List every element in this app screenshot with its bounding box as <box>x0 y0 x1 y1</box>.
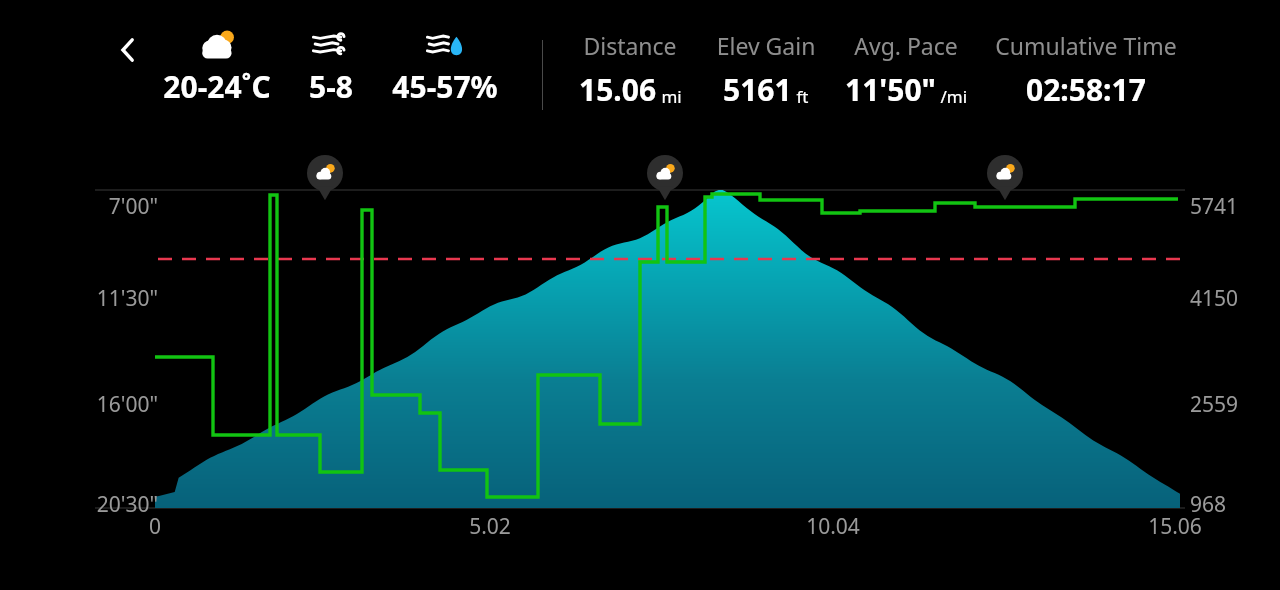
staticText: 11'30" <box>20 284 158 313</box>
staticText: 5161 <box>723 69 792 110</box>
button[interactable]: Distance <box>515 30 745 110</box>
staticText: 02:58:17 <box>1026 69 1146 110</box>
staticText: ft <box>792 85 809 108</box>
staticText: 0 <box>95 512 215 541</box>
staticText: Elev Gain <box>651 30 881 61</box>
staticText: 5-8 <box>256 66 406 107</box>
staticText: 20-24˚C <box>142 66 292 107</box>
button[interactable]: 45-57% <box>370 24 520 107</box>
staticText: 7'00" <box>20 192 158 221</box>
staticText: 16'00" <box>20 390 158 419</box>
staticText: 5.02 <box>430 512 550 541</box>
staticText: Cumulative Time <box>971 30 1201 61</box>
staticText: Distance <box>515 30 745 61</box>
button[interactable]: 20-24˚C <box>142 24 292 107</box>
staticText: 5741 <box>1190 192 1274 221</box>
staticText: mi <box>657 85 682 108</box>
staticText: 968 <box>1190 490 1274 519</box>
staticText: 10.04 <box>773 512 893 541</box>
staticText: 15.06 <box>579 69 657 110</box>
staticText: 15.06 <box>1115 512 1235 541</box>
button[interactable]: Avg. Pace <box>791 30 1021 110</box>
staticText: 2559 <box>1190 390 1274 419</box>
button[interactable]: Back <box>104 26 152 74</box>
staticText: 4150 <box>1190 284 1274 313</box>
staticText: /mi <box>936 85 968 108</box>
staticText: 11'50" <box>845 69 936 110</box>
staticText: 45-57% <box>370 66 520 107</box>
button[interactable]: Cumulative Time <box>971 30 1201 110</box>
staticText: Avg. Pace <box>791 30 1021 61</box>
staticText: 20'30" <box>20 490 158 519</box>
button[interactable]: 5-8 <box>256 24 406 107</box>
button[interactable]: Elev Gain <box>651 30 881 110</box>
